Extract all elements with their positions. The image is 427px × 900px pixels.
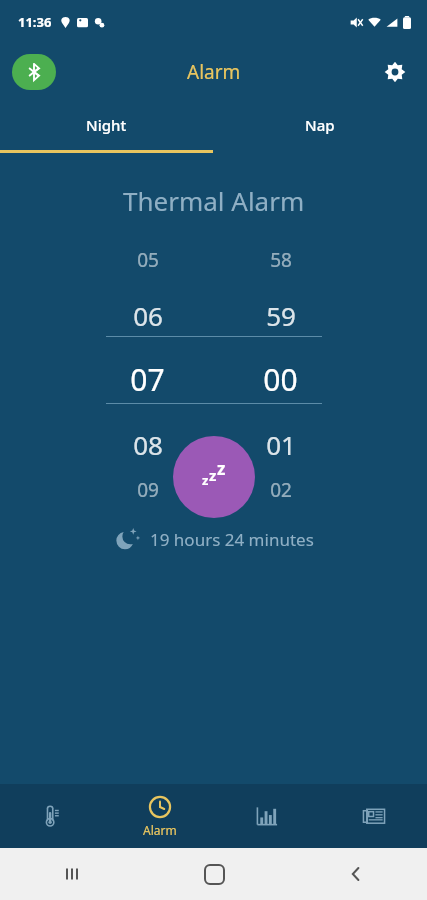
staticText: 02 — [270, 477, 292, 503]
staticText: z — [209, 465, 217, 485]
button[interactable]: Thermometer — [0, 784, 106, 848]
button[interactable]: Home — [143, 848, 285, 900]
staticText: Night — [86, 115, 127, 135]
staticText: Alarm — [187, 59, 241, 85]
button[interactable]: 19 hours 24 minutes — [114, 526, 314, 552]
staticText: 00 — [263, 359, 298, 400]
staticText: Nap — [305, 115, 335, 135]
staticText: 19 hours 24 minutes — [150, 528, 314, 551]
button[interactable]: 58 — [228, 236, 333, 504]
staticText: 11:36 — [18, 13, 52, 31]
button[interactable]: Nap — [213, 100, 427, 150]
button[interactable]: Recents — [0, 848, 143, 900]
staticText: 06 — [133, 298, 163, 333]
staticText: z — [217, 457, 226, 480]
button[interactable]: 05 — [95, 236, 200, 504]
button[interactable]: Start sleep — [173, 436, 255, 518]
button[interactable]: Night — [0, 100, 213, 150]
button[interactable]: Alarm — [106, 784, 213, 848]
button[interactable]: Bluetooth — [12, 54, 56, 90]
staticText: Alarm — [143, 822, 177, 838]
button[interactable]: News — [320, 784, 427, 848]
button[interactable]: Back — [285, 848, 427, 900]
staticText: z — [202, 471, 209, 489]
staticText: 07 — [130, 359, 165, 400]
staticText: Thermal Alarm — [123, 183, 305, 218]
staticText: 08 — [133, 427, 163, 462]
staticText: 58 — [270, 247, 292, 273]
button[interactable]: Settings — [373, 50, 417, 94]
staticText: 59 — [266, 298, 296, 333]
staticText: 01 — [266, 427, 296, 462]
staticText: 09 — [137, 477, 159, 503]
button[interactable]: Statistics — [213, 784, 320, 848]
staticText: 05 — [137, 247, 159, 273]
